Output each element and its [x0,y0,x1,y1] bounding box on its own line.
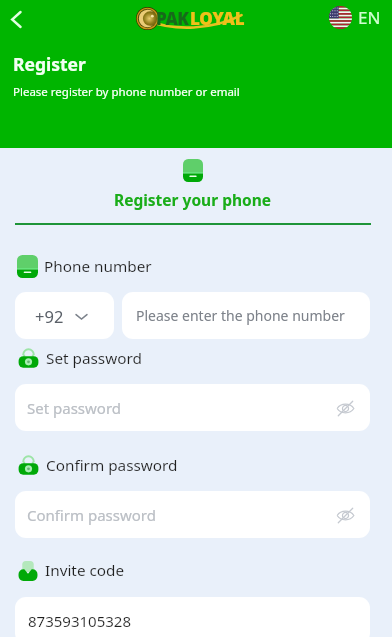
button[interactable]: Back [0,0,32,35]
staticText: Invite code [45,560,125,581]
staticText: LOYAL [190,7,245,30]
staticText: Set password [27,398,122,418]
button[interactable]: EN [321,6,392,29]
staticText: Confirm password [46,455,178,476]
staticText: Please enter the phone number [136,306,345,325]
staticText: EN [358,6,381,29]
staticText: Confirm password [27,505,156,525]
button[interactable]: Please enter the phone number [122,292,370,339]
staticText: Please register by phone number or email [13,84,240,100]
button[interactable]: Show password [333,503,357,527]
button[interactable]: 873593105328 [15,597,370,637]
button[interactable]: Confirm password [15,491,370,538]
staticText: +92 [35,305,64,327]
staticText: Register [13,52,86,76]
staticText: Set password [46,348,142,369]
staticText: PAK [156,7,189,30]
staticText: Register your phone [15,189,370,210]
staticText: 873593105328 [28,611,131,631]
staticText: Phone number [44,256,152,277]
button[interactable]: Show password [333,396,357,420]
button[interactable]: +92 [15,292,114,339]
button[interactable]: Set password [15,384,370,431]
